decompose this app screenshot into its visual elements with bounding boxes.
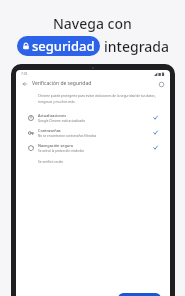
staticText: Navega con [53,14,132,33]
button[interactable]: Atrás [21,80,29,88]
staticText: seguridad [32,37,95,55]
button[interactable]: Actualizaciones [16,110,170,125]
staticText: Actualizaciones [38,113,67,118]
staticText: riesgosos y muchos más. [38,100,76,104]
staticText: Chrome puede protegerte para evitar viol… [38,94,156,98]
staticText: Contraseñas [38,128,61,133]
staticText: Se verificó recién [38,160,64,164]
staticText: Google Chrome está actualizado [38,119,86,123]
staticText: Verificación de seguridad [32,80,92,87]
staticText: Se activó la protección estándar [38,149,85,153]
staticText: Navegación segura [38,143,73,148]
button[interactable]: Contraseñas [16,125,170,140]
button[interactable]: Ayuda [157,80,165,88]
staticText: integrada [104,37,169,56]
staticText: 7:35 [21,72,28,76]
button[interactable]: Navegación segura [16,140,170,155]
button[interactable]: Verificar ahora [118,293,161,296]
staticText: No se encontraron contraseñas filtradas [38,134,97,138]
